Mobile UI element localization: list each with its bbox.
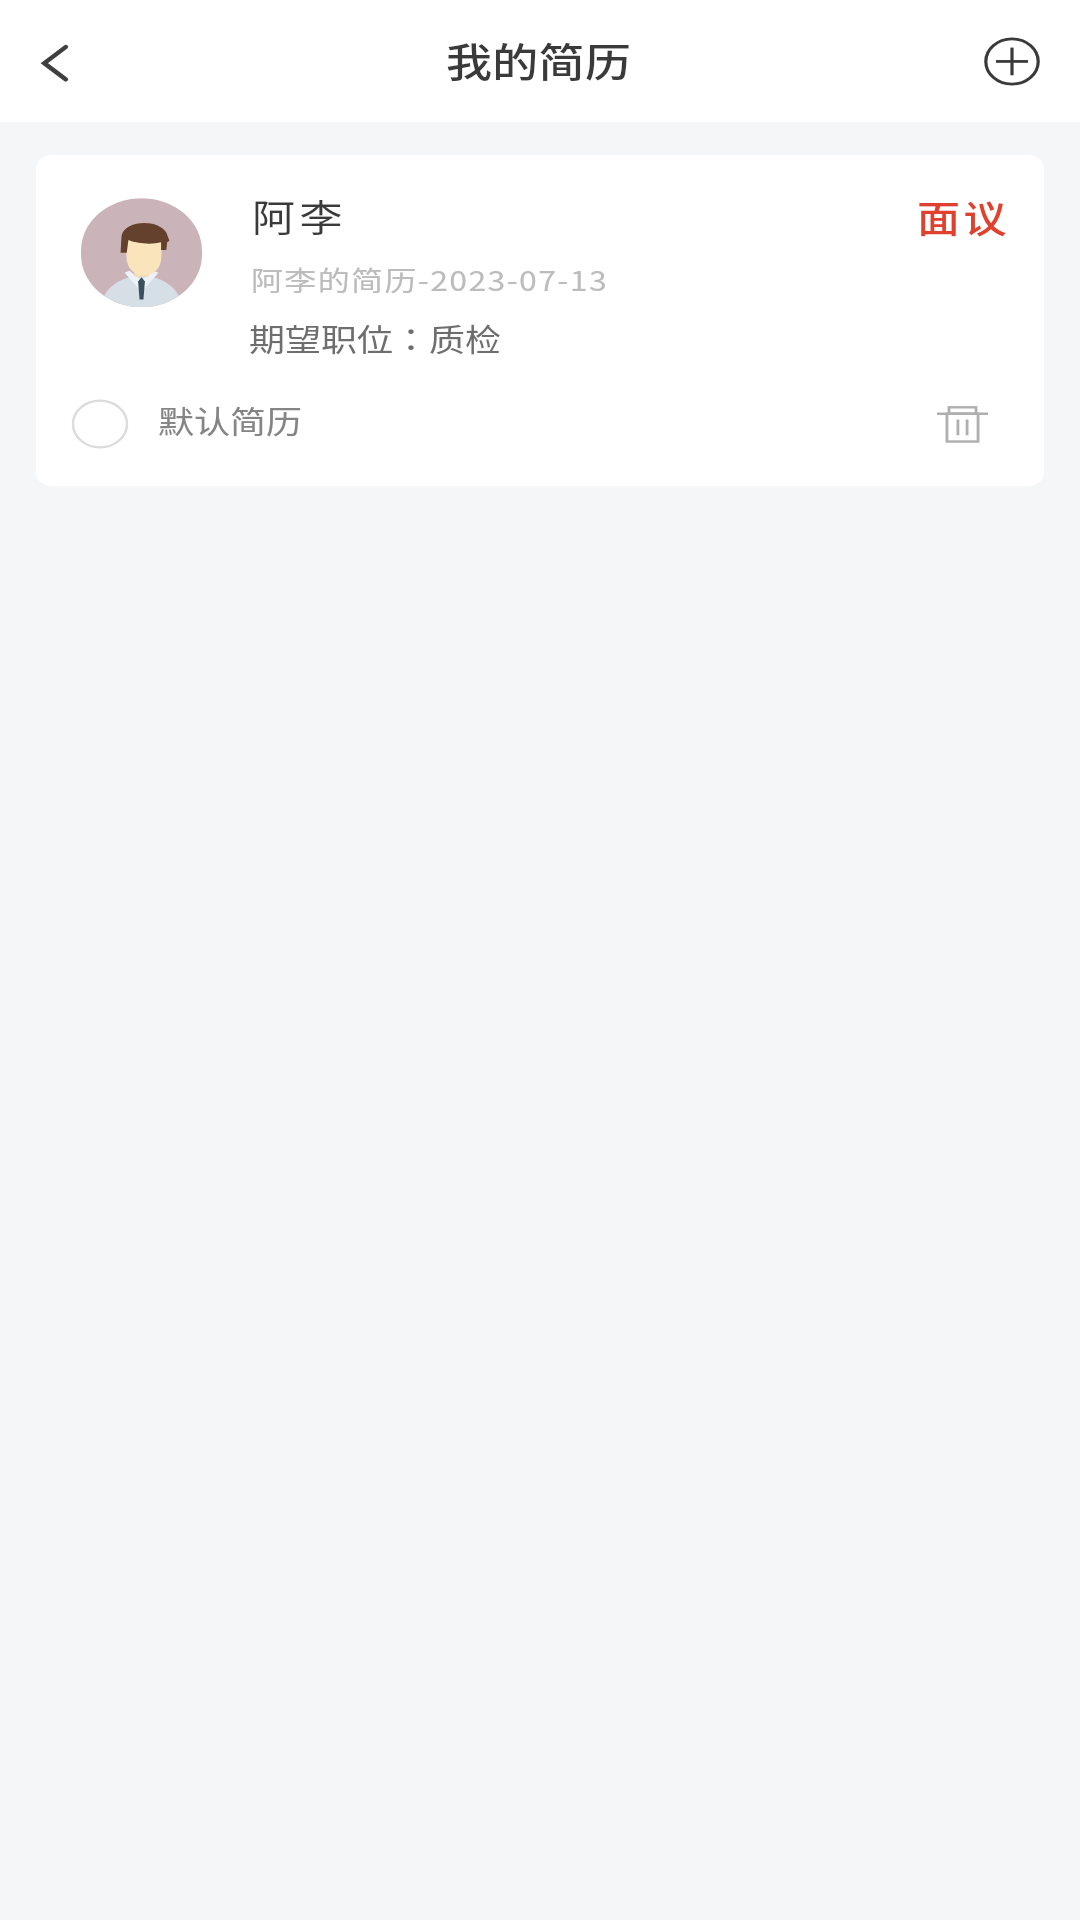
button[interactable]: 阿李	[36, 155, 1044, 486]
staticText: 默认简历	[158, 397, 303, 442]
staticText: 面议	[917, 189, 1010, 243]
staticText: 阿李的简历-2023-07-13	[251, 259, 608, 298]
staticText: 阿李	[252, 189, 347, 242]
button[interactable]: 默认简历	[69, 385, 303, 463]
button[interactable]: Add resume	[968, 22, 1056, 100]
button[interactable]: Back	[13, 24, 97, 102]
button[interactable]: Delete	[917, 385, 1007, 463]
staticText: 期望职位：质检	[249, 315, 502, 360]
staticText: 我的简历	[446, 31, 632, 89]
